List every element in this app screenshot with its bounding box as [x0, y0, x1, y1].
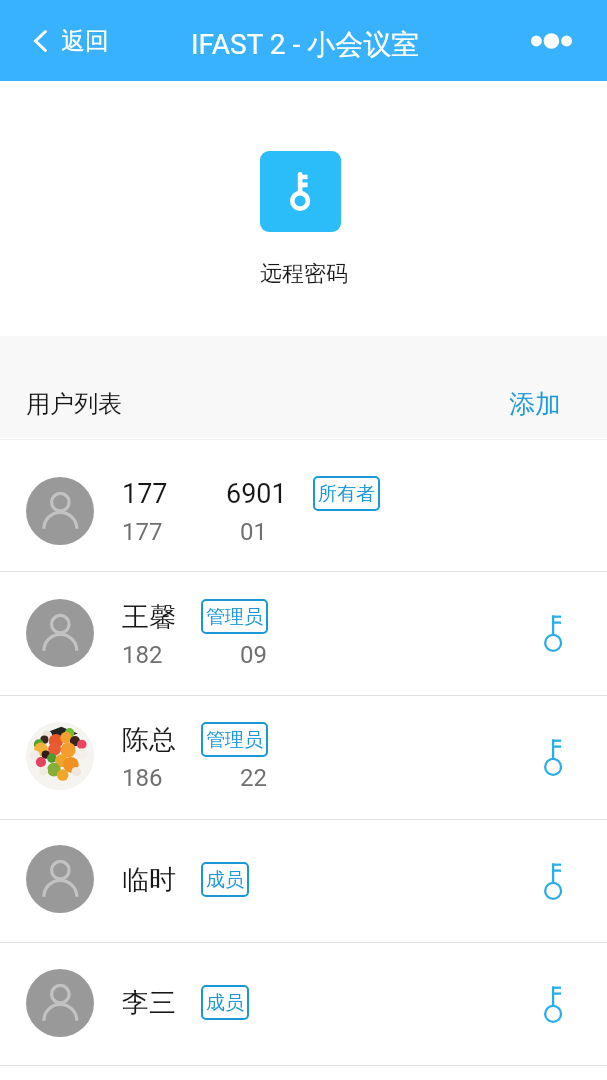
staticText: 陈总	[122, 723, 176, 757]
button[interactable]: Key	[528, 731, 578, 783]
staticText: 远程密码	[260, 260, 348, 288]
staticText: 李三	[122, 986, 176, 1020]
staticText: 用户列表	[26, 389, 122, 419]
button[interactable]: More options	[513, 16, 607, 66]
staticText: 返回	[61, 26, 109, 56]
button[interactable]: Key	[528, 855, 578, 907]
staticText: 186	[122, 764, 163, 792]
staticText: 管理员	[206, 605, 263, 629]
button[interactable]: 返回	[0, 12, 125, 70]
staticText: 成员	[206, 991, 244, 1015]
staticText: 添加	[509, 388, 561, 421]
staticText: 09	[240, 641, 267, 669]
staticText: 22	[240, 764, 267, 792]
staticText: 177	[122, 518, 163, 546]
button[interactable]: Key	[528, 978, 578, 1030]
button[interactable]: 177	[0, 439, 607, 571]
staticText: 王馨	[122, 600, 176, 634]
button[interactable]: 李三	[0, 942, 607, 1065]
staticText: IFAST 2 - 小会议室	[191, 27, 420, 62]
staticText: 177	[122, 478, 168, 510]
staticText: 01	[240, 518, 267, 546]
button[interactable]: 远程密码	[260, 151, 341, 232]
button[interactable]: 王馨	[0, 571, 607, 695]
staticText: 182	[122, 641, 163, 669]
staticText: 6901	[226, 478, 287, 510]
staticText: 管理员	[206, 728, 263, 752]
button[interactable]: 临时	[0, 819, 607, 942]
staticText: 成员	[206, 868, 244, 892]
staticText: 临时	[122, 863, 176, 897]
button[interactable]: 陈总	[0, 695, 607, 819]
staticText: 所有者	[318, 482, 375, 506]
button[interactable]: 添加	[489, 366, 581, 443]
button[interactable]: Key	[528, 607, 578, 659]
